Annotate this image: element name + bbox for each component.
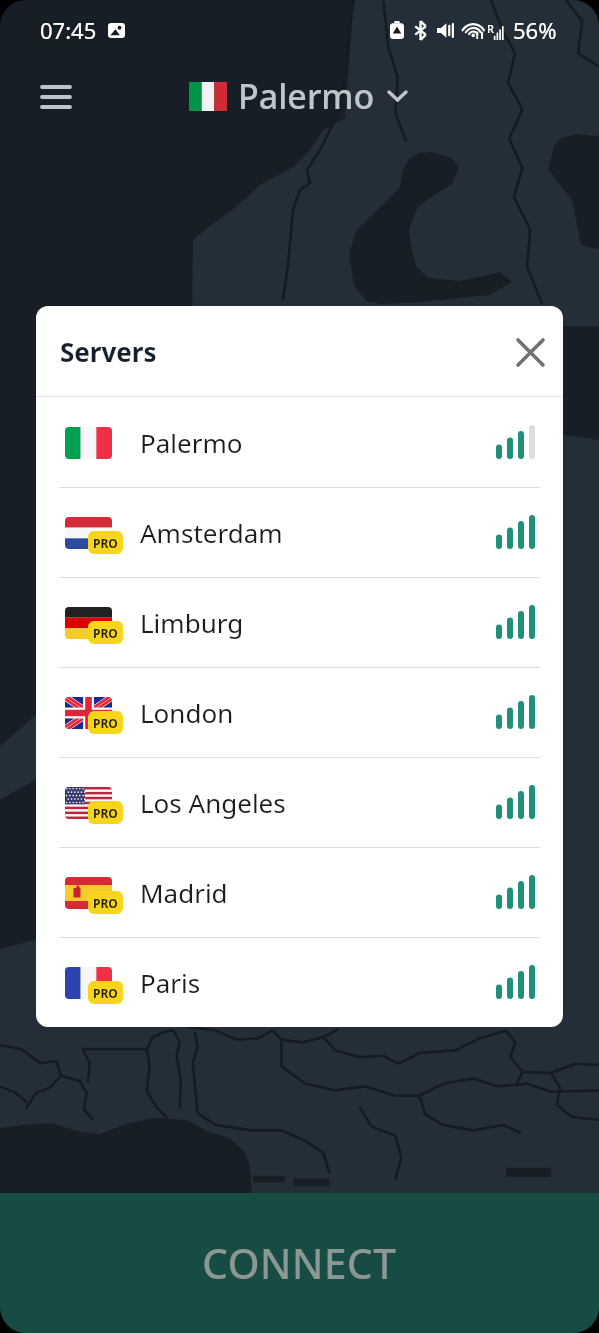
staticText: PRO [93, 985, 118, 1001]
staticText: London [140, 695, 234, 730]
staticText: Los Angeles [140, 785, 286, 820]
button[interactable]: Menu [29, 70, 83, 124]
button[interactable]: PRO [36, 667, 563, 757]
staticText: Limburg [140, 605, 244, 640]
button[interactable]: PRO [36, 487, 563, 577]
staticText: 07:45 [40, 15, 97, 45]
button[interactable]: CONNECT [0, 1193, 599, 1333]
button[interactable]: PRO [36, 847, 563, 937]
staticText: Paris [140, 965, 201, 1000]
staticText: Palermo [140, 425, 243, 460]
staticText: Madrid [140, 875, 228, 910]
staticText: Servers [60, 334, 157, 369]
staticText: Palermo [238, 73, 375, 119]
button[interactable]: Palermo [189, 73, 408, 119]
button[interactable]: PRO [36, 577, 563, 667]
button[interactable]: Close [506, 328, 554, 376]
staticText: PRO [93, 715, 118, 731]
staticText: CONNECT [202, 1235, 397, 1291]
button[interactable]: PRO [36, 937, 563, 1027]
staticText: PRO [93, 805, 118, 821]
staticText: R [487, 21, 494, 36]
staticText: PRO [93, 895, 118, 911]
button[interactable]: Palermo [36, 397, 563, 487]
staticText: PRO [93, 535, 118, 551]
staticText: Amsterdam [140, 515, 283, 550]
staticText: PRO [93, 625, 118, 641]
staticText: 56% [513, 15, 557, 45]
button[interactable]: PRO [36, 757, 563, 847]
